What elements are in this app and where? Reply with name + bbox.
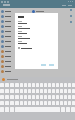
button[interactable] bbox=[36, 101, 39, 105]
button[interactable] bbox=[60, 89, 63, 93]
button[interactable] bbox=[60, 95, 63, 99]
button[interactable] bbox=[24, 101, 27, 105]
button[interactable] bbox=[28, 83, 31, 87]
button[interactable] bbox=[32, 89, 35, 93]
button[interactable] bbox=[32, 95, 35, 99]
button[interactable] bbox=[0, 49, 15, 54]
button[interactable] bbox=[0, 24, 15, 29]
button[interactable] bbox=[48, 89, 51, 93]
button[interactable] bbox=[44, 95, 47, 99]
button[interactable] bbox=[0, 29, 15, 34]
button[interactable] bbox=[0, 44, 15, 49]
button[interactable] bbox=[40, 83, 43, 87]
button[interactable] bbox=[60, 83, 63, 87]
button[interactable] bbox=[48, 83, 51, 87]
button[interactable] bbox=[40, 95, 43, 99]
button[interactable] bbox=[60, 101, 63, 105]
button[interactable] bbox=[0, 9, 15, 14]
button[interactable] bbox=[20, 101, 23, 105]
button[interactable] bbox=[36, 83, 39, 87]
button[interactable] bbox=[0, 39, 15, 44]
button[interactable] bbox=[0, 54, 15, 59]
button[interactable] bbox=[28, 95, 31, 99]
button[interactable] bbox=[64, 89, 67, 93]
button[interactable] bbox=[48, 101, 51, 105]
button[interactable] bbox=[32, 83, 35, 87]
button[interactable] bbox=[36, 89, 39, 93]
button[interactable] bbox=[52, 101, 55, 105]
button[interactable] bbox=[20, 95, 23, 99]
button[interactable] bbox=[0, 19, 15, 24]
button[interactable] bbox=[52, 95, 55, 99]
button[interactable] bbox=[68, 95, 71, 99]
button[interactable] bbox=[68, 89, 71, 93]
button[interactable] bbox=[56, 101, 59, 105]
button[interactable] bbox=[36, 95, 39, 99]
button[interactable] bbox=[56, 83, 59, 87]
button[interactable] bbox=[72, 101, 75, 105]
button[interactable] bbox=[40, 89, 43, 93]
button[interactable] bbox=[68, 83, 71, 87]
button[interactable] bbox=[52, 83, 55, 87]
button[interactable] bbox=[0, 64, 15, 69]
button[interactable] bbox=[24, 83, 27, 87]
button[interactable] bbox=[72, 83, 75, 87]
button[interactable] bbox=[0, 14, 15, 19]
button[interactable] bbox=[68, 101, 71, 105]
button[interactable] bbox=[0, 69, 15, 74]
button[interactable] bbox=[32, 101, 35, 105]
button[interactable] bbox=[28, 101, 31, 105]
button[interactable] bbox=[72, 89, 75, 93]
button[interactable] bbox=[52, 89, 55, 93]
button[interactable] bbox=[44, 89, 47, 93]
button[interactable] bbox=[28, 89, 31, 93]
button[interactable] bbox=[56, 89, 59, 93]
button[interactable] bbox=[0, 34, 15, 39]
button[interactable] bbox=[20, 83, 23, 87]
button[interactable] bbox=[40, 101, 43, 105]
button[interactable] bbox=[64, 95, 67, 99]
button[interactable] bbox=[44, 101, 47, 105]
button[interactable] bbox=[56, 95, 59, 99]
button[interactable] bbox=[64, 83, 67, 87]
button[interactable] bbox=[48, 95, 51, 99]
button[interactable] bbox=[0, 59, 15, 64]
button[interactable] bbox=[24, 95, 27, 99]
button[interactable] bbox=[20, 89, 23, 93]
button[interactable] bbox=[44, 83, 47, 87]
button[interactable] bbox=[72, 95, 75, 99]
button[interactable] bbox=[64, 101, 67, 105]
button[interactable] bbox=[24, 89, 27, 93]
